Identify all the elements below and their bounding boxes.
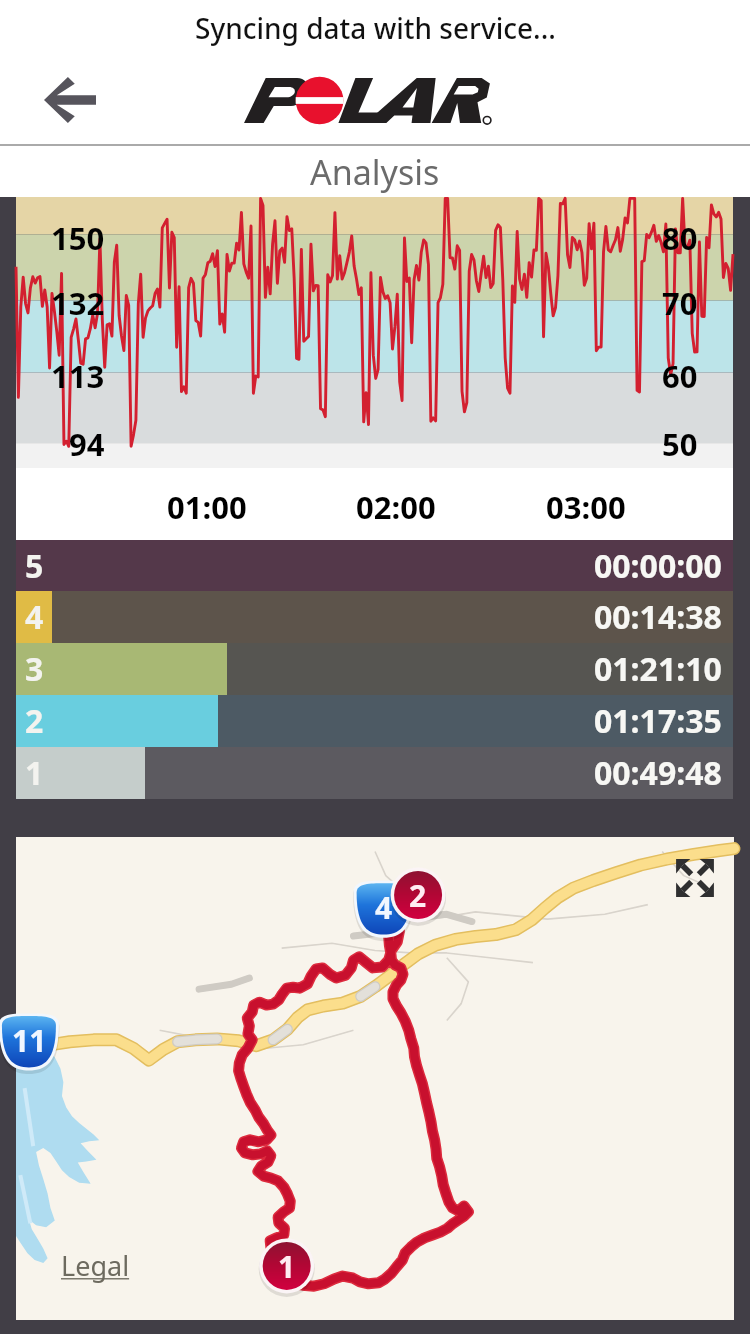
staticText: Syncing data with service... [195, 9, 556, 47]
button[interactable]: 5 [16, 540, 733, 591]
staticText: 00:49:48 [594, 751, 722, 795]
staticText: 01:21:10 [594, 647, 722, 691]
staticText: 1 [278, 1246, 296, 1287]
button[interactable]: Legal [61, 1247, 130, 1284]
staticText: Legal [61, 1247, 130, 1284]
staticText: 1 [25, 751, 44, 795]
button[interactable]: Expand map [674, 857, 716, 899]
staticText: 2 [25, 699, 44, 743]
staticText: 60 [662, 355, 698, 397]
staticText: 00:14:38 [594, 595, 722, 639]
staticText: 70 [662, 282, 698, 324]
button[interactable]: 4 [16, 591, 733, 643]
staticText: 94 [69, 423, 105, 465]
button[interactable]: 3 [16, 643, 733, 695]
staticText: Analysis [310, 149, 440, 195]
button[interactable]: Back [30, 65, 110, 135]
staticText: 02:00 [356, 486, 436, 528]
staticText: 03:00 [546, 486, 626, 528]
staticText: 5 [25, 544, 44, 588]
staticText: 00:00:00 [594, 544, 722, 588]
button[interactable]: 1 [16, 747, 733, 799]
staticText: 01:17:35 [594, 699, 722, 743]
staticText: 11 [12, 1020, 47, 1061]
button[interactable]: 2 [16, 695, 733, 747]
staticText: 4 [375, 887, 393, 928]
staticText: 50 [662, 423, 698, 465]
staticText: 4 [25, 595, 44, 639]
staticText: 80 [662, 217, 698, 259]
staticText: 2 [409, 875, 427, 916]
staticText: 132 [51, 282, 105, 324]
staticText: 01:00 [167, 486, 247, 528]
button[interactable]: 4 [16, 837, 734, 1320]
staticText: 3 [25, 647, 44, 691]
staticText: 113 [51, 355, 105, 397]
staticText: 150 [51, 217, 105, 259]
